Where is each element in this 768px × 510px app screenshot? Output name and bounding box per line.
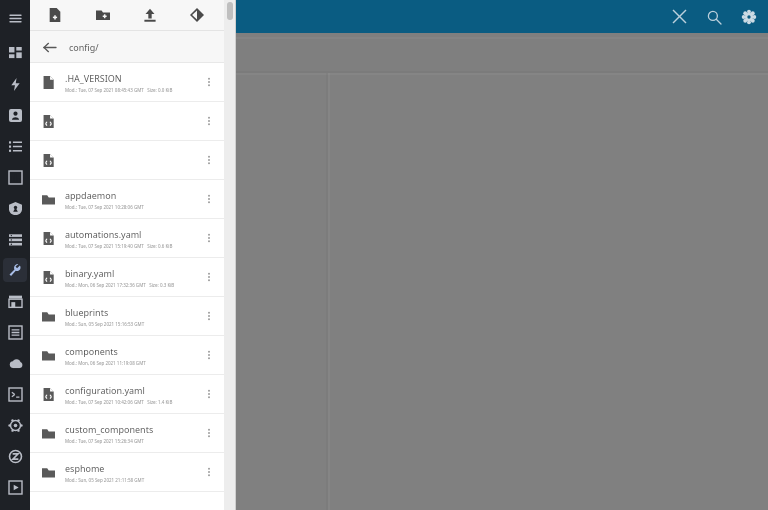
button[interactable]: binary.yaml bbox=[30, 258, 224, 296]
staticText: binary.yaml bbox=[65, 267, 115, 279]
other: Back bbox=[38, 36, 60, 58]
button[interactable]: More options bbox=[198, 110, 220, 132]
button[interactable]: Git bbox=[186, 4, 208, 26]
button[interactable]: Terminal bbox=[3, 382, 27, 406]
button[interactable]: More options bbox=[198, 383, 220, 405]
button[interactable]: components bbox=[30, 336, 224, 374]
button[interactable]: More options bbox=[198, 227, 220, 249]
button[interactable]: More options bbox=[30, 102, 224, 140]
button[interactable]: custom_components bbox=[30, 414, 224, 452]
button[interactable]: Energy bbox=[3, 72, 27, 96]
staticText: custom_components bbox=[65, 423, 154, 435]
staticText: components bbox=[65, 345, 118, 357]
button[interactable]: More options bbox=[198, 266, 220, 288]
button[interactable]: Media bbox=[3, 227, 27, 251]
button[interactable]: Close bbox=[662, 0, 696, 33]
button[interactable]: appdaemon bbox=[30, 180, 224, 218]
staticText: configuration.yaml bbox=[65, 384, 145, 396]
button[interactable]: Search bbox=[697, 0, 731, 33]
button[interactable]: More options bbox=[198, 305, 220, 327]
staticText: Mod.: Tue, 07 Sep 2021 08:45:43 GMT Size… bbox=[65, 87, 173, 93]
staticText: .HA_VERSION bbox=[65, 72, 122, 84]
button[interactable]: Node red bbox=[3, 413, 27, 437]
button[interactable]: More options bbox=[198, 149, 220, 171]
staticText: Mod.: Tue, 07 Sep 2021 15:26:34 GMT bbox=[65, 438, 144, 444]
button[interactable]: Player bbox=[3, 475, 27, 499]
button[interactable]: esphome bbox=[30, 453, 224, 491]
staticText: Mod.: Sun, 05 Sep 2021 21:11:58 GMT bbox=[65, 477, 145, 483]
staticText: Mod.: Tue, 07 Sep 2021 15:19:40 GMT Size… bbox=[65, 243, 173, 249]
button[interactable]: More options bbox=[198, 188, 220, 210]
staticText: Mod.: Sun, 05 Sep 2021 15:16:53 GMT bbox=[65, 321, 145, 327]
staticText: Mod.: Mon, 06 Sep 2021 17:32:36 GMT Size… bbox=[65, 282, 175, 288]
button[interactable]: More options bbox=[30, 141, 224, 179]
button[interactable]: Upload bbox=[139, 4, 161, 26]
button[interactable]: configuration.yaml bbox=[30, 375, 224, 413]
button[interactable]: .HA_VERSION bbox=[30, 63, 224, 101]
button[interactable]: Menu bbox=[3, 6, 27, 30]
staticText: blueprints bbox=[65, 306, 109, 318]
button[interactable]: Back bbox=[30, 31, 224, 62]
button[interactable]: More options bbox=[198, 71, 220, 93]
button[interactable]: Logbook bbox=[3, 134, 27, 158]
staticText: Mod.: Tue, 07 Sep 2021 10:28:06 GMT bbox=[65, 204, 144, 210]
button[interactable]: Security bbox=[3, 196, 27, 220]
button[interactable]: blueprints bbox=[30, 297, 224, 335]
button[interactable]: automations.yaml bbox=[30, 219, 224, 257]
staticText: Mod.: Tue, 07 Sep 2021 10:42:06 GMT Size… bbox=[65, 399, 173, 405]
staticText: config/ bbox=[69, 41, 99, 53]
staticText: automations.yaml bbox=[65, 228, 142, 240]
button[interactable]: More options bbox=[198, 461, 220, 483]
staticText: appdaemon bbox=[65, 189, 117, 201]
staticText: Mod.: Mon, 06 Sep 2021 11:19:08 GMT bbox=[65, 360, 146, 366]
button[interactable]: Supervisor bbox=[3, 289, 27, 313]
button[interactable]: History bbox=[3, 165, 27, 189]
button[interactable]: Notes bbox=[3, 320, 27, 344]
button[interactable]: Overview bbox=[3, 41, 27, 65]
button[interactable]: Settings bbox=[732, 0, 766, 33]
button[interactable]: More options bbox=[198, 422, 220, 444]
button[interactable]: New file bbox=[44, 4, 66, 26]
button[interactable]: More options bbox=[198, 344, 220, 366]
staticText: esphome bbox=[65, 462, 105, 474]
button[interactable]: Map bbox=[3, 103, 27, 127]
button[interactable]: Developer tools bbox=[3, 258, 27, 282]
button[interactable]: Weather bbox=[3, 351, 27, 375]
button[interactable]: Zigbee bbox=[3, 444, 27, 468]
button[interactable]: New folder bbox=[92, 4, 114, 26]
